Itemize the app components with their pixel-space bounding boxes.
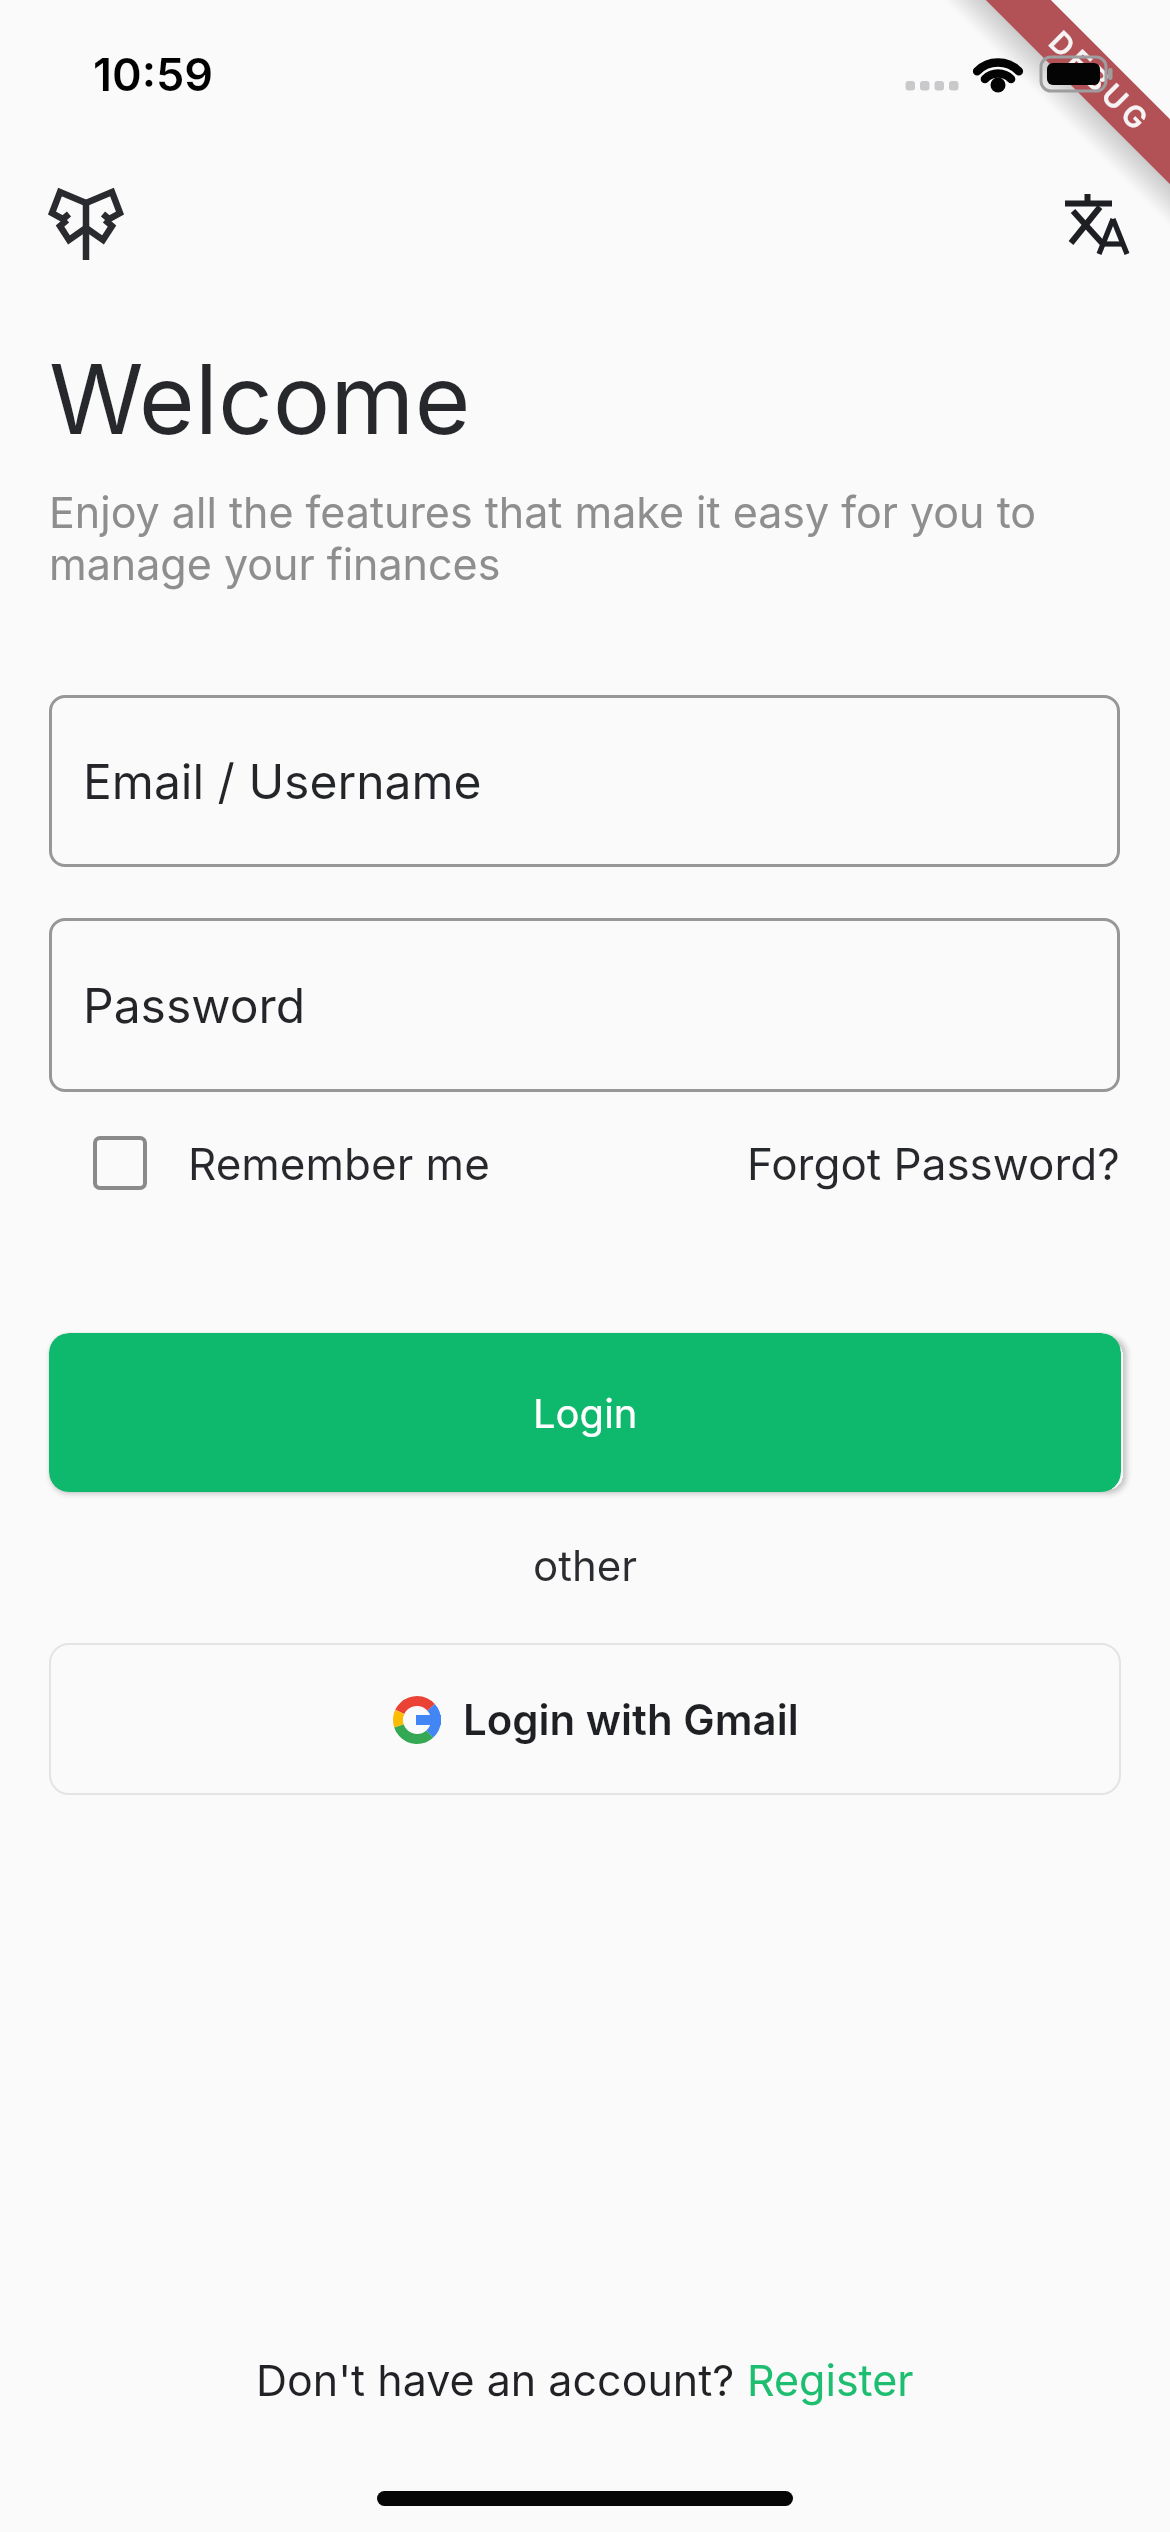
button[interactable]: Remember me bbox=[93, 1136, 490, 1190]
staticText: Password bbox=[83, 976, 306, 1034]
button[interactable]: Forgot Password? bbox=[747, 1137, 1120, 1190]
staticText: 10:59 bbox=[93, 47, 214, 101]
button[interactable]: Don't have an account? bbox=[0, 2354, 1170, 2406]
staticText: other bbox=[533, 1540, 638, 1591]
staticText: Forgot Password? bbox=[747, 1137, 1120, 1190]
staticText: DEBUG bbox=[1042, 23, 1159, 141]
button[interactable]: Login with Gmail bbox=[49, 1643, 1121, 1795]
button[interactable] bbox=[1063, 192, 1131, 258]
staticText: Enjoy all the features that make it easy… bbox=[49, 486, 1037, 590]
staticText: Login with Gmail bbox=[463, 1694, 799, 1745]
button[interactable]: Email / Username bbox=[49, 695, 1120, 867]
button[interactable] bbox=[50, 190, 122, 262]
staticText: Email / Username bbox=[83, 752, 482, 810]
staticText: Don't have an account? bbox=[256, 2354, 747, 2406]
button[interactable]: Login bbox=[49, 1333, 1121, 1492]
staticText: Login bbox=[533, 1389, 638, 1437]
staticText: Remember me bbox=[188, 1137, 490, 1190]
staticText: Register bbox=[747, 2354, 914, 2406]
staticText: Welcome bbox=[49, 341, 471, 457]
button[interactable]: Password bbox=[49, 918, 1120, 1092]
